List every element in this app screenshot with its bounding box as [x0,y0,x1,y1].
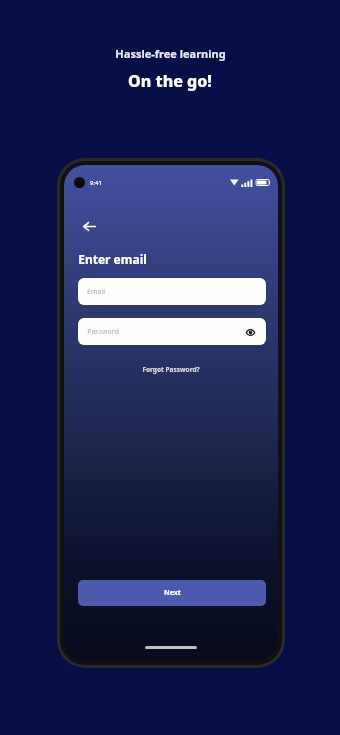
button[interactable]: Email [78,278,266,305]
button[interactable]: Forgot Password? [136,363,206,376]
staticText: Hassle-free learning [115,46,226,61]
staticText: Enter email [78,251,147,267]
staticText: On the go! [128,70,212,92]
staticText: Password [87,327,119,337]
staticText: Forgot Password? [142,365,200,374]
button[interactable]: Show password [243,325,257,339]
staticText: Email [87,287,105,297]
staticText: Next [164,588,181,598]
button[interactable]: Next [78,580,266,606]
button[interactable]: Password [78,318,266,345]
button[interactable]: Back [78,215,100,237]
staticText: 9:41 [90,179,102,187]
